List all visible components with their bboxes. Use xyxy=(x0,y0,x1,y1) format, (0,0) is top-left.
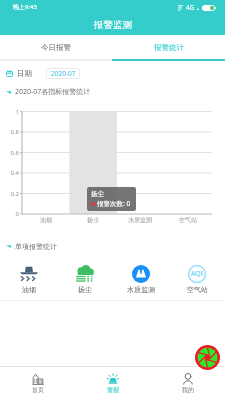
staticText: 0.6 xyxy=(0,149,19,157)
button[interactable]: 警报 xyxy=(75,367,150,400)
button[interactable]: 拍照 xyxy=(195,345,220,370)
staticText: 晚上9:45 xyxy=(13,3,37,11)
staticText: 水质监测 xyxy=(128,216,152,224)
staticText: 报警统计 xyxy=(154,43,184,52)
staticText: 1 xyxy=(0,108,19,116)
button[interactable]: 油烟 xyxy=(0,258,57,300)
staticText: 2020-07各指标报警统计 xyxy=(15,87,91,97)
staticText: 扬尘 xyxy=(87,216,99,224)
staticText: 0.8 xyxy=(0,128,19,136)
staticText: 水质监测 xyxy=(127,285,155,294)
button[interactable]: AQI xyxy=(169,258,225,300)
button[interactable]: 首页 xyxy=(0,367,75,400)
staticText: 2020-07 xyxy=(51,69,76,78)
staticText: 0.4 xyxy=(0,169,19,177)
staticText: 油烟 xyxy=(40,216,52,224)
staticText: 空气站 xyxy=(187,285,208,294)
staticText: 4G xyxy=(186,3,195,12)
staticText: 日期 xyxy=(17,69,32,78)
button[interactable]: 2020-07 xyxy=(46,68,80,79)
button[interactable]: 今日报警 xyxy=(0,35,112,59)
staticText: 首页 xyxy=(32,386,44,394)
staticText: AQI xyxy=(191,269,204,279)
staticText: 我的 xyxy=(182,386,194,394)
staticText: 报警次数: 0 xyxy=(97,199,131,208)
staticText: 警报 xyxy=(107,386,119,394)
staticText: 扬尘 xyxy=(91,190,104,198)
button[interactable]: 水质监测 xyxy=(113,258,169,300)
staticText: 单项报警统计 xyxy=(15,242,57,251)
button[interactable]: 报警统计 xyxy=(112,35,225,59)
staticText: 空气站 xyxy=(179,216,197,224)
staticText: 0 xyxy=(0,210,19,218)
staticText: 报警监测 xyxy=(94,19,132,31)
button[interactable]: 扬尘 xyxy=(57,258,113,300)
staticText: 0.2 xyxy=(0,190,19,198)
staticText: 油烟 xyxy=(22,285,36,294)
staticText: 今日报警 xyxy=(41,43,71,52)
staticText: 扬尘 xyxy=(78,285,92,294)
button[interactable]: 我的 xyxy=(150,367,225,400)
